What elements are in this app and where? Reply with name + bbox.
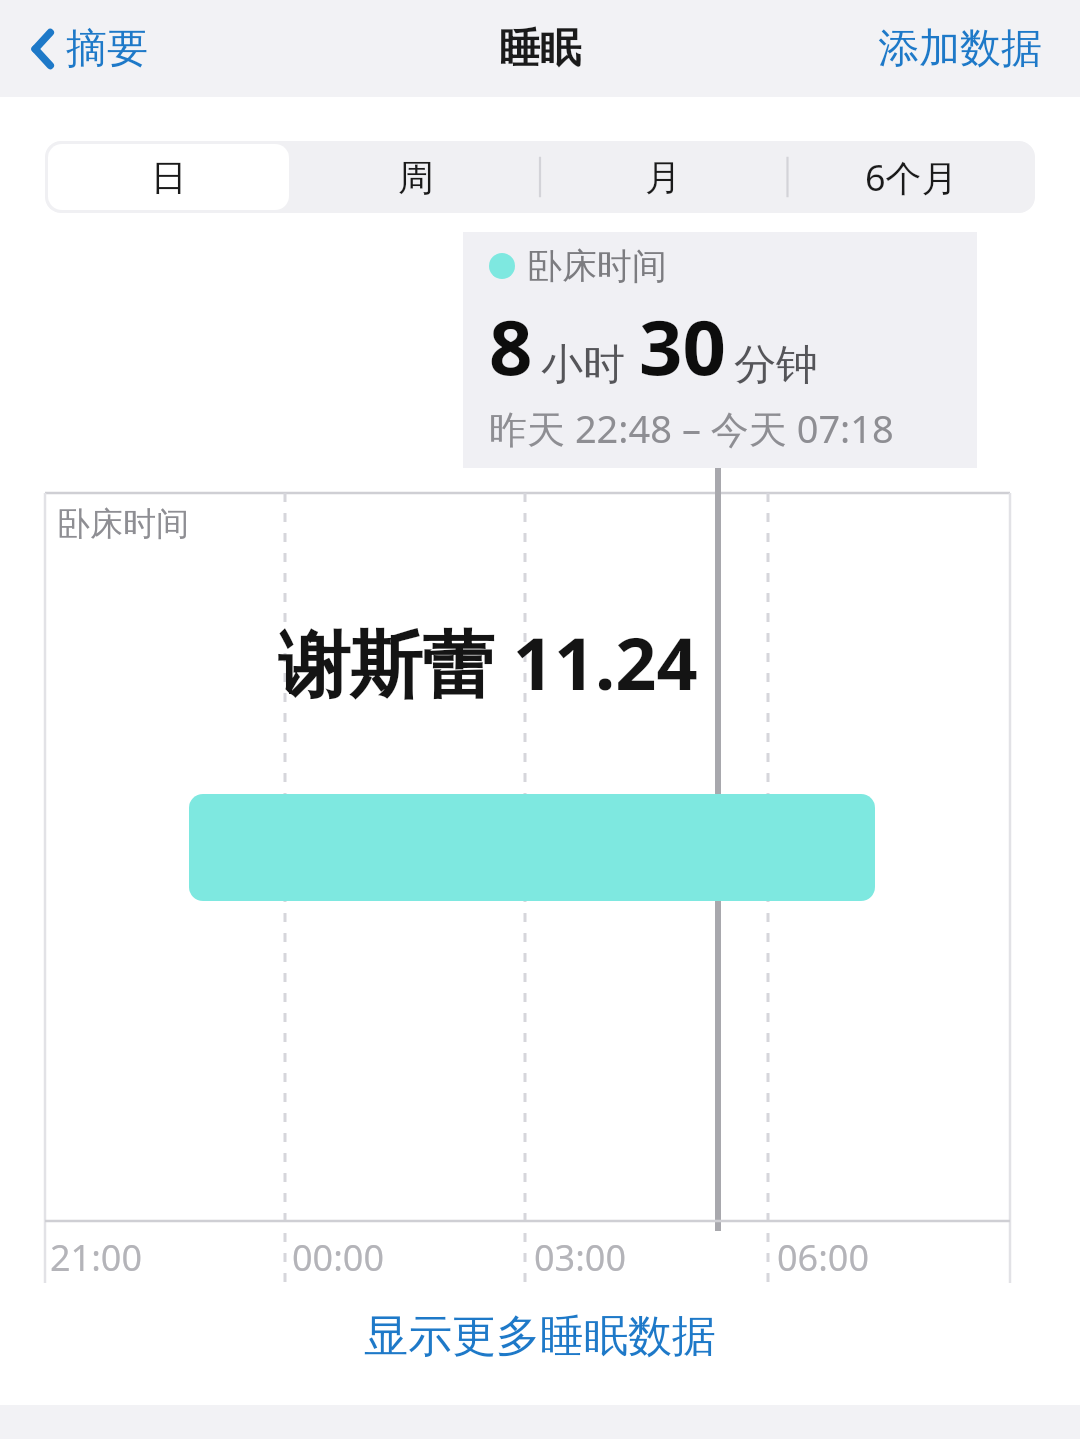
button[interactable]: 摘要 bbox=[22, 17, 156, 81]
staticText: 8 bbox=[489, 294, 533, 398]
staticText: 谢斯蕾 11.24 bbox=[278, 613, 698, 711]
staticText: 6个月 bbox=[865, 153, 958, 202]
staticText: 卧床时间 bbox=[527, 244, 667, 288]
staticText: 周 bbox=[398, 155, 434, 200]
button[interactable]: 6个月 bbox=[790, 144, 1032, 210]
staticText: 小时 bbox=[541, 339, 625, 392]
staticText: 摘要 bbox=[66, 23, 148, 75]
button[interactable]: 添加数据 bbox=[872, 17, 1048, 81]
staticText: 03:00 bbox=[534, 1233, 627, 1282]
staticText: 睡眠 bbox=[499, 23, 581, 75]
staticText: 显示更多睡眠数据 bbox=[364, 1309, 716, 1364]
staticText: 卧床时间 bbox=[57, 503, 189, 545]
staticText: 分钟 bbox=[734, 339, 818, 392]
button[interactable]: 显示更多睡眠数据 bbox=[0, 1309, 1080, 1364]
staticText: 06:00 bbox=[777, 1233, 870, 1282]
staticText: 月 bbox=[645, 155, 681, 200]
button[interactable]: 月 bbox=[542, 144, 784, 210]
staticText: 日 bbox=[151, 155, 187, 200]
staticText: 30 bbox=[639, 294, 726, 398]
staticText: 添加数据 bbox=[878, 23, 1042, 75]
button[interactable]: 周 bbox=[295, 144, 536, 210]
staticText: 00:00 bbox=[292, 1233, 385, 1282]
staticText: 21:00 bbox=[50, 1233, 143, 1282]
staticText: 昨天 22:48 – 今天 07:18 bbox=[489, 402, 894, 454]
button[interactable]: 日 bbox=[48, 144, 289, 210]
